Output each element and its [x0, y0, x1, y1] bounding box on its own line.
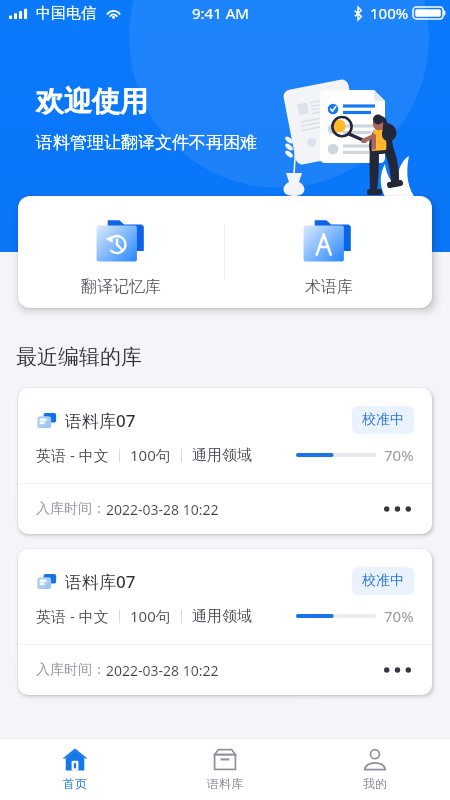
staticText: 通用领域: [192, 446, 252, 465]
staticText: 100%: [370, 3, 409, 23]
staticText: 欢迎使用: [36, 84, 148, 119]
staticText: 语料库07: [65, 409, 136, 432]
button[interactable]: More options: [380, 492, 414, 526]
staticText: 英语 - 中文: [36, 606, 109, 626]
staticText: 校准中: [362, 411, 404, 429]
staticText: 校准中: [362, 572, 404, 590]
staticText: 翻译记忆库: [81, 277, 161, 297]
staticText: 通用领域: [192, 607, 252, 626]
staticText: 入库时间：: [36, 661, 106, 679]
button[interactable]: 首页: [0, 739, 150, 800]
button[interactable]: 翻译记忆库: [18, 196, 224, 308]
staticText: 70%: [384, 606, 414, 626]
staticText: 70%: [384, 445, 414, 465]
staticText: 2022-03-28 10:22: [106, 661, 219, 680]
staticText: 英语 - 中文: [36, 445, 109, 465]
staticText: 语料库07: [65, 570, 136, 593]
staticText: 入库时间：: [36, 500, 106, 518]
staticText: 100句: [130, 606, 171, 626]
button[interactable]: 我的: [300, 739, 450, 800]
staticText: 2022-03-28 10:22: [106, 500, 219, 519]
staticText: 术语库: [305, 277, 353, 297]
staticText: 中国电信: [36, 4, 96, 23]
staticText: 最近编辑的库: [16, 344, 142, 370]
button[interactable]: 语料库07: [18, 549, 432, 695]
staticText: 语料库: [207, 776, 243, 791]
staticText: 我的: [363, 776, 387, 791]
button[interactable]: 语料库07: [18, 388, 432, 534]
button[interactable]: 校准中: [352, 406, 414, 434]
staticText: 语料管理让翻译文件不再困难: [36, 132, 257, 153]
button[interactable]: More options: [380, 653, 414, 687]
button[interactable]: 术语库: [225, 196, 432, 308]
button[interactable]: 语料库: [150, 739, 300, 800]
button[interactable]: 校准中: [352, 567, 414, 595]
staticText: 首页: [63, 776, 87, 791]
staticText: 9:41 AM: [192, 3, 249, 23]
staticText: 100句: [130, 445, 171, 465]
